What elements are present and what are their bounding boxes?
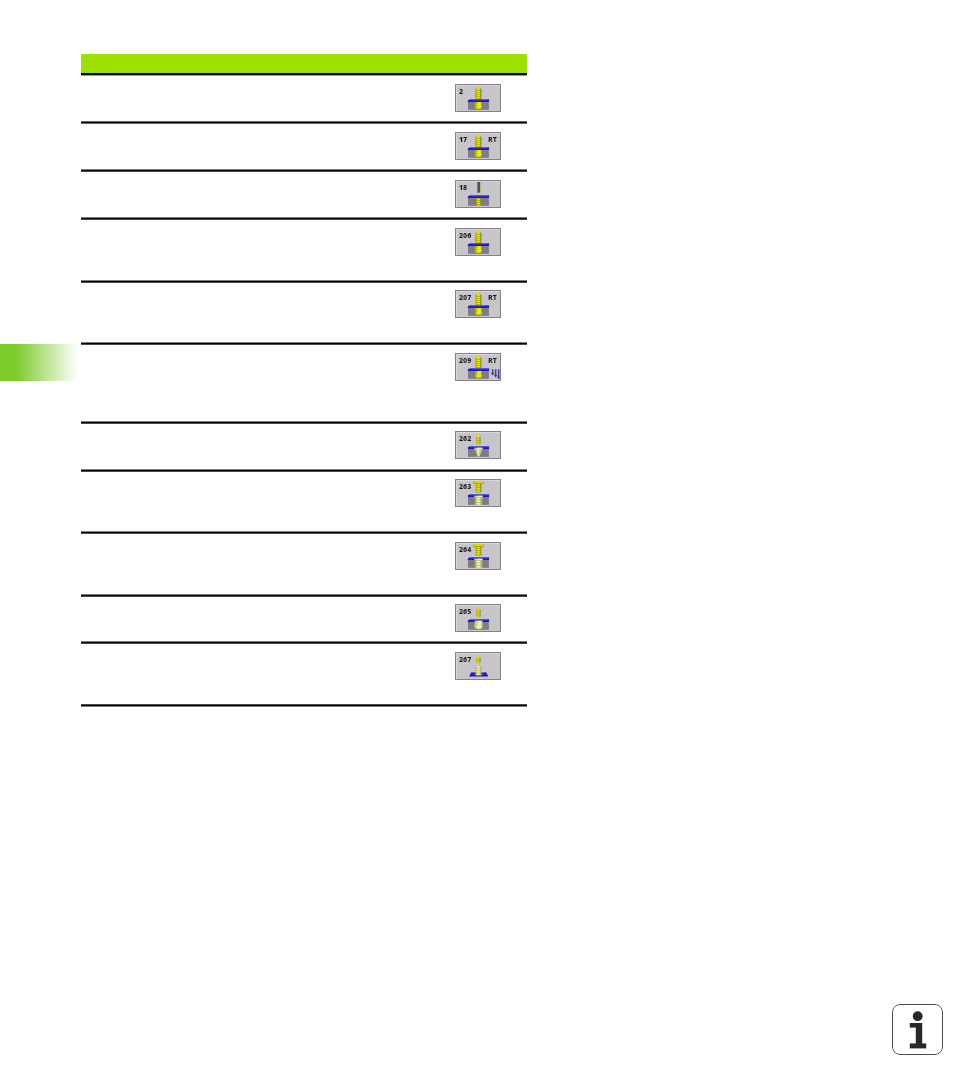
- staticText: 264: [459, 545, 472, 555]
- staticText: 207: [459, 293, 472, 303]
- staticText: 18: [459, 183, 468, 193]
- staticText: 2: [459, 87, 464, 97]
- staticText: RT: [488, 293, 497, 303]
- button[interactable]: Cycle 263: [455, 479, 501, 507]
- button[interactable]: Cycle 265: [455, 604, 501, 632]
- staticText: 209: [459, 356, 472, 366]
- button[interactable]: Cycle 262: [455, 431, 501, 459]
- button[interactable]: Cycle 206: [455, 228, 501, 256]
- staticText: RT: [488, 135, 497, 145]
- button[interactable]: Information: [892, 1004, 943, 1055]
- button[interactable]: Cycle 18: [455, 180, 501, 208]
- staticText: 267: [459, 655, 472, 665]
- button[interactable]: Cycle 264: [455, 542, 501, 570]
- button[interactable]: Cycle 17: [455, 132, 501, 160]
- button[interactable]: Cycle 267: [455, 652, 501, 680]
- staticText: 206: [459, 231, 472, 241]
- staticText: 262: [459, 434, 472, 444]
- button[interactable]: Cycle 209: [455, 353, 501, 381]
- staticText: 265: [459, 607, 472, 617]
- staticText: 17: [459, 135, 468, 145]
- button[interactable]: Cycle 2: [455, 84, 501, 112]
- staticText: 263: [459, 482, 472, 492]
- staticText: RT: [488, 356, 497, 366]
- button[interactable]: Cycle 207: [455, 290, 501, 318]
